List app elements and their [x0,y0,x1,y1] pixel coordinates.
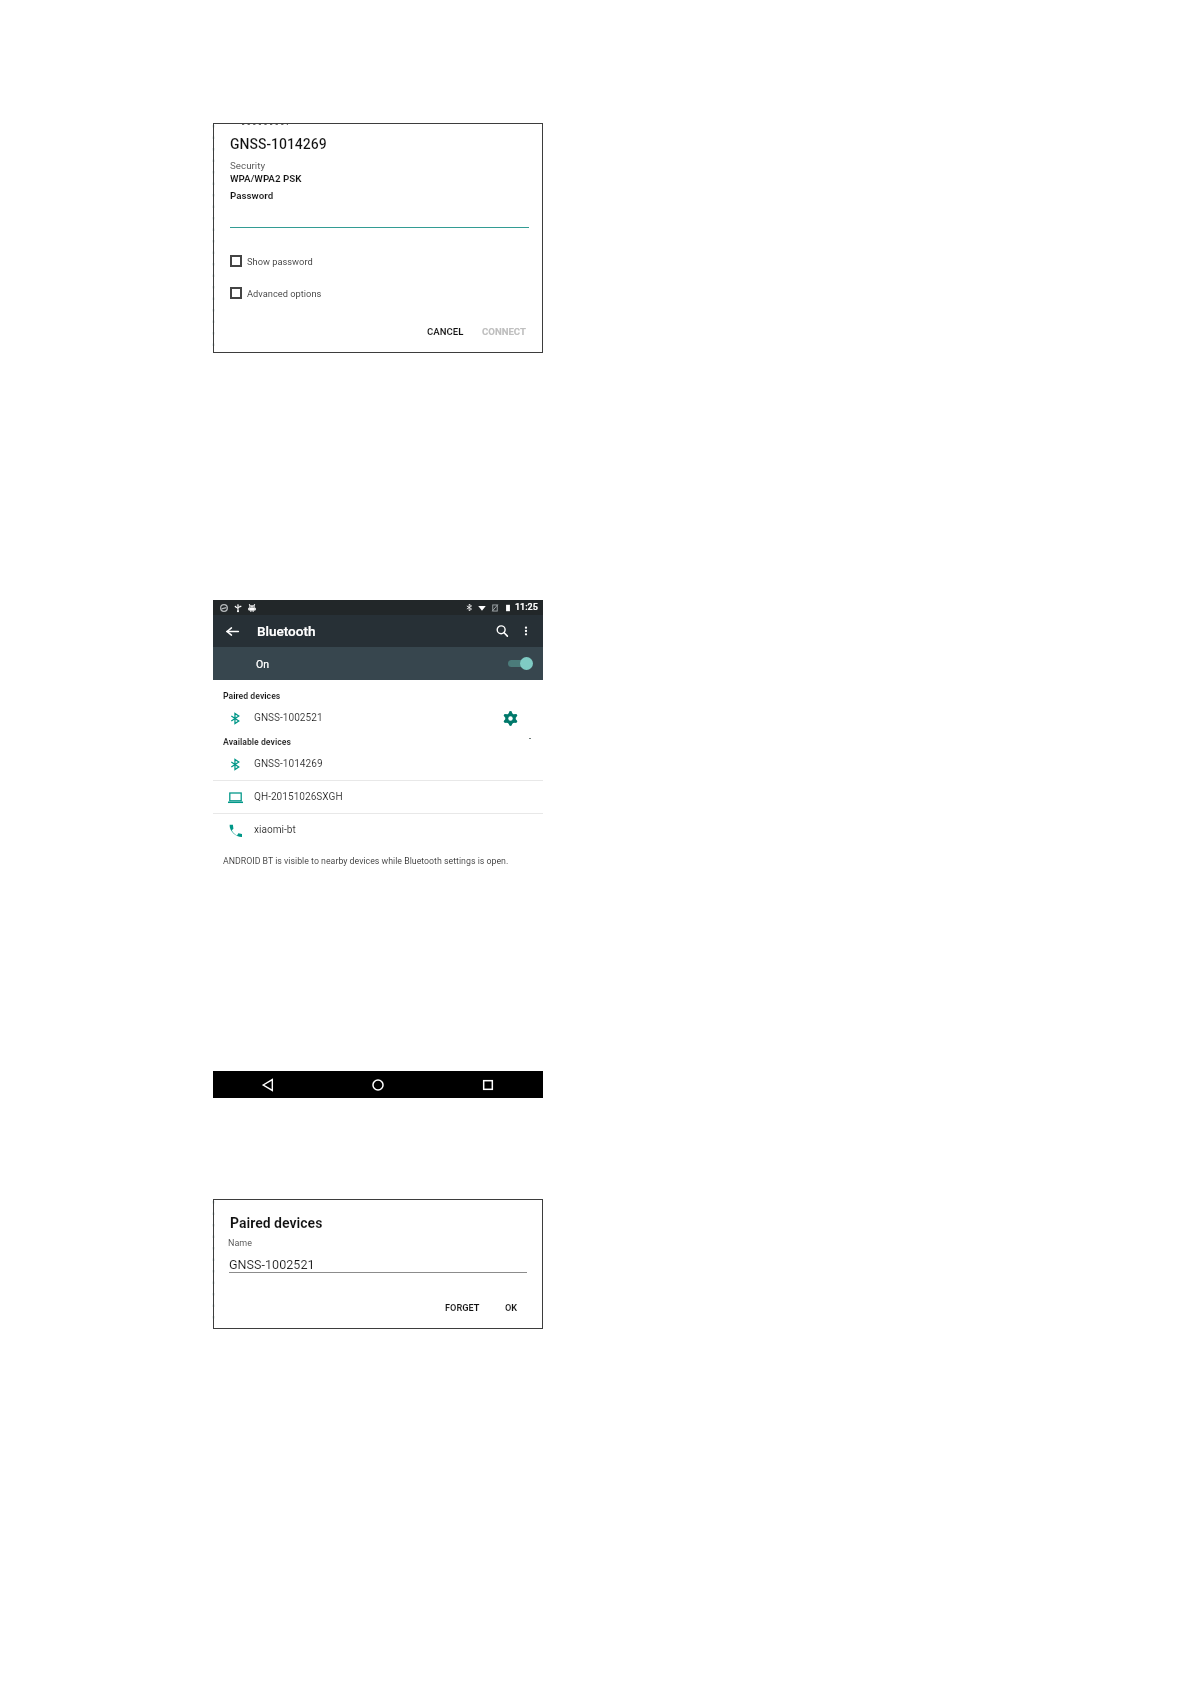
button[interactable]: QH-20151026SXGH [213,781,543,813]
button[interactable]: GNSS-1002521 [213,707,543,729]
staticText: Show password [247,256,313,267]
button[interactable]: Home [323,1071,433,1098]
button[interactable]: Device settings [500,708,520,728]
button[interactable]: On [213,647,543,680]
button[interactable]: Show password [213,255,313,267]
button[interactable]: xiaomi-bt [213,814,543,846]
staticText: CANCEL [427,326,464,337]
staticText: 11:25 [515,602,538,613]
button[interactable]: Recents [433,1071,543,1098]
staticText: WPA/WPA2 PSK [230,173,302,184]
staticText: CONNECT [482,326,526,337]
staticText: Paired devices [230,1215,323,1231]
staticText: QH-20151026SXGH [254,791,343,803]
staticText: Bluetooth [257,623,316,639]
button[interactable]: Search [491,620,513,642]
staticText: GNSS-1014269 [230,136,327,152]
staticText: GNSS-1002521 [229,1257,315,1272]
staticText: Paired devices [223,691,281,701]
button[interactable]: More options [515,620,537,642]
button[interactable]: Password field [213,201,543,228]
button[interactable]: OK [502,1299,521,1316]
staticText: ANDROID BT is visible to nearby devices … [223,856,509,866]
button[interactable]: FORGET [442,1299,483,1316]
button[interactable]: Back [222,621,242,641]
button[interactable]: Back [213,1071,323,1098]
staticText: Password [230,190,274,201]
staticText: OK [505,1302,518,1313]
staticText: GNSS-1002521 [254,712,323,724]
staticText: Advanced options [247,288,322,299]
staticText: Security [230,160,266,171]
button[interactable]: GNSS-1014269 [213,753,543,775]
button[interactable]: CANCEL [424,323,467,340]
button[interactable]: Advanced options [213,287,322,299]
staticText: GNSS-1014269 [254,758,323,770]
staticText: Available devices [223,737,291,747]
staticText: Name [228,1238,252,1249]
staticText: On [256,658,270,670]
staticText: FORGET [445,1302,480,1313]
staticText: xiaomi-bt [254,824,296,836]
button[interactable]: CONNECT [479,323,529,340]
